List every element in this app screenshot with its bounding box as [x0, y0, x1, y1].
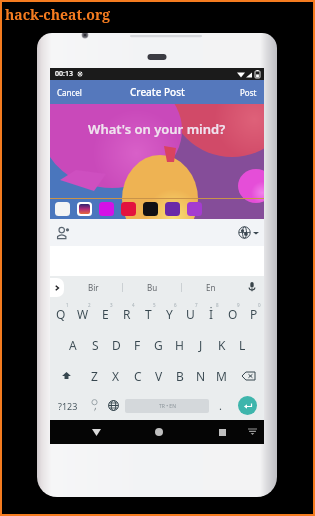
- button[interactable]: H: [169, 329, 190, 360]
- button[interactable]: V: [148, 360, 169, 391]
- button[interactable]: Bir: [64, 276, 122, 298]
- button[interactable]: R: [116, 298, 138, 329]
- button[interactable]: B: [169, 360, 190, 391]
- staticText: Cancel: [57, 87, 82, 98]
- button[interactable]: TR • EN: [125, 399, 209, 413]
- button[interactable]: E: [94, 298, 116, 329]
- staticText: Bu: [147, 282, 158, 293]
- staticText: 5: [153, 302, 156, 308]
- button[interactable]: Comma: [85, 391, 104, 420]
- staticText: TR • EN: [159, 403, 176, 410]
- staticText: M: [216, 368, 227, 384]
- staticText: hack-cheat.org: [5, 5, 111, 24]
- staticText: F: [134, 337, 141, 353]
- staticText: A: [69, 337, 77, 353]
- button[interactable]: S: [84, 329, 106, 360]
- staticText: 7: [195, 302, 198, 308]
- staticText: Bir: [88, 282, 99, 293]
- button[interactable]: G: [148, 329, 169, 360]
- staticText: 9: [237, 302, 240, 308]
- staticText: 00:13: [55, 69, 73, 79]
- staticText: O: [228, 306, 238, 322]
- staticText: Q: [56, 306, 66, 322]
- staticText: S: [92, 337, 99, 353]
- button[interactable]: Audience: Public: [238, 226, 259, 239]
- button[interactable]: Background colour: [55, 202, 70, 216]
- button[interactable]: J: [190, 329, 211, 360]
- button[interactable]: Q: [50, 298, 72, 329]
- staticText: W: [77, 306, 89, 322]
- button[interactable]: X: [105, 360, 127, 391]
- button[interactable]: Z: [83, 360, 105, 391]
- button[interactable]: Period: [211, 391, 230, 420]
- button[interactable]: F: [127, 329, 148, 360]
- button[interactable]: Background colour: [99, 202, 114, 216]
- staticText: Post: [240, 87, 257, 98]
- button[interactable]: Recents: [210, 420, 234, 444]
- button[interactable]: Background colour: [187, 202, 202, 216]
- button[interactable]: C: [127, 360, 148, 391]
- button[interactable]: W: [72, 298, 94, 329]
- staticText: En: [206, 282, 216, 293]
- button[interactable]: Background colour: [143, 202, 158, 216]
- button[interactable]: Background colour: [121, 202, 136, 216]
- staticText: N: [196, 368, 206, 384]
- button[interactable]: Background colour: [165, 202, 180, 216]
- button[interactable]: Enter: [238, 396, 257, 415]
- button[interactable]: P: [243, 298, 264, 329]
- button[interactable]: K: [211, 329, 232, 360]
- button[interactable]: Change keyboard language: [104, 391, 123, 420]
- button[interactable]: İ: [201, 298, 222, 329]
- button[interactable]: En: [182, 276, 240, 298]
- staticText: V: [155, 368, 163, 384]
- staticText: 8: [216, 302, 219, 308]
- button[interactable]: M: [211, 360, 232, 391]
- staticText: H: [175, 337, 184, 353]
- button[interactable]: Tag people: [55, 225, 71, 241]
- button[interactable]: Back: [84, 420, 108, 444]
- staticText: B: [176, 368, 184, 384]
- button[interactable]: ?123: [50, 391, 85, 420]
- staticText: 6: [174, 302, 177, 308]
- button[interactable]: O: [222, 298, 243, 329]
- button[interactable]: Hide keyboard: [244, 424, 260, 440]
- staticText: 2: [88, 302, 91, 308]
- staticText: What's on your mind?: [88, 120, 226, 138]
- button[interactable]: T: [138, 298, 159, 329]
- button[interactable]: Voice input: [240, 276, 264, 298]
- button[interactable]: Backspace: [232, 360, 264, 391]
- staticText: J: [199, 337, 203, 353]
- staticText: D: [112, 337, 121, 353]
- staticText: Z: [91, 368, 98, 384]
- button[interactable]: Y: [159, 298, 180, 329]
- staticText: T: [145, 306, 152, 322]
- staticText: L: [239, 337, 246, 353]
- button[interactable]: L: [232, 329, 253, 360]
- staticText: U: [186, 306, 195, 322]
- button[interactable]: D: [106, 329, 127, 360]
- staticText: 1: [66, 302, 69, 308]
- staticText: ?123: [58, 400, 78, 412]
- staticText: P: [250, 306, 258, 322]
- button[interactable]: Shift: [50, 360, 83, 391]
- button[interactable]: A: [62, 329, 84, 360]
- staticText: C: [134, 368, 142, 384]
- staticText: 3: [110, 302, 113, 308]
- button[interactable]: More suggestions: [50, 278, 64, 297]
- staticText: K: [218, 337, 226, 353]
- staticText: 4: [132, 302, 135, 308]
- button[interactable]: Bu: [123, 276, 181, 298]
- button[interactable]: U: [180, 298, 201, 329]
- staticText: R: [123, 306, 131, 322]
- staticText: Y: [166, 306, 173, 322]
- button[interactable]: Home: [147, 420, 171, 444]
- button[interactable]: Post: [233, 82, 264, 103]
- staticText: .: [219, 398, 222, 413]
- staticText: G: [154, 337, 163, 353]
- button[interactable]: N: [190, 360, 211, 391]
- staticText: E: [102, 306, 109, 322]
- staticText: İ: [209, 306, 214, 322]
- staticText: X: [112, 368, 120, 384]
- button[interactable]: Cancel: [50, 82, 89, 103]
- button[interactable]: Background image: [79, 204, 90, 214]
